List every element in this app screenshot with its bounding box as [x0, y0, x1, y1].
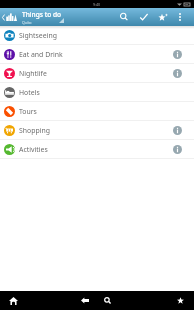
staticText: Hotels	[19, 88, 161, 97]
button[interactable]: Sightseeing	[0, 26, 194, 45]
button[interactable]: Nightlife	[0, 64, 194, 83]
button[interactable]: Bookmarks	[166, 291, 194, 310]
button[interactable]: Navigate up	[0, 8, 20, 26]
button[interactable]: More options	[172, 8, 188, 26]
staticText: Sightseeing	[19, 31, 161, 40]
button[interactable]: Shopping	[0, 121, 194, 140]
staticText: Quito	[22, 20, 32, 25]
staticText: Activities	[19, 145, 161, 154]
staticText: 9:40	[93, 2, 101, 7]
button[interactable]: Search	[96, 291, 119, 310]
button[interactable]: Add to favorites	[154, 8, 172, 26]
button[interactable]: Home	[0, 291, 26, 310]
button[interactable]: Eat and Drink	[0, 45, 194, 64]
staticText: Tours	[19, 107, 161, 116]
staticText: Eat and Drink	[19, 50, 161, 59]
staticText: Things to do	[22, 10, 62, 19]
staticText: Shopping	[19, 126, 161, 135]
button[interactable]: Search	[114, 8, 134, 26]
button[interactable]: Back	[72, 291, 97, 310]
button[interactable]: Hotels	[0, 83, 194, 102]
staticText: Nightlife	[19, 69, 161, 78]
button[interactable]: Activities	[0, 140, 194, 159]
button[interactable]: Tours	[0, 102, 194, 121]
button[interactable]: Edit	[134, 8, 154, 26]
